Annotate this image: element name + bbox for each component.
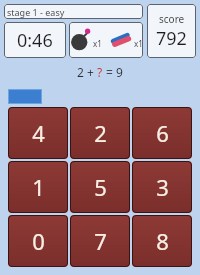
- staticText: 7: [94, 226, 107, 256]
- staticText: ?: [97, 64, 103, 80]
- button[interactable]: Eraser power-up: [109, 31, 133, 49]
- button[interactable]: 1: [8, 161, 68, 213]
- button[interactable]: 4: [8, 107, 68, 159]
- staticText: 2 +: [77, 64, 97, 80]
- button[interactable]: 0: [8, 215, 68, 267]
- button[interactable]: 6: [132, 107, 192, 159]
- staticText: 792: [156, 26, 187, 51]
- staticText: = 9: [103, 64, 123, 80]
- staticText: 4: [32, 118, 45, 148]
- staticText: x1: [93, 38, 102, 49]
- button[interactable]: 5: [70, 161, 130, 213]
- button[interactable]: 3: [132, 161, 192, 213]
- staticText: 3: [156, 172, 169, 202]
- staticText: 6: [156, 118, 169, 148]
- staticText: 0: [32, 226, 45, 256]
- staticText: 2: [94, 118, 107, 148]
- staticText: 8: [156, 226, 169, 256]
- button[interactable]: Bomb power-up: [70, 29, 92, 51]
- staticText: score: [159, 12, 185, 26]
- staticText: x1: [134, 38, 143, 49]
- staticText: 1: [32, 172, 45, 202]
- button[interactable]: 8: [132, 215, 192, 267]
- staticText: stage 1 - easy: [7, 6, 143, 18]
- staticText: 0:46: [17, 28, 53, 53]
- staticText: 5: [94, 172, 107, 202]
- button[interactable]: 2: [70, 107, 130, 159]
- button[interactable]: 7: [70, 215, 130, 267]
